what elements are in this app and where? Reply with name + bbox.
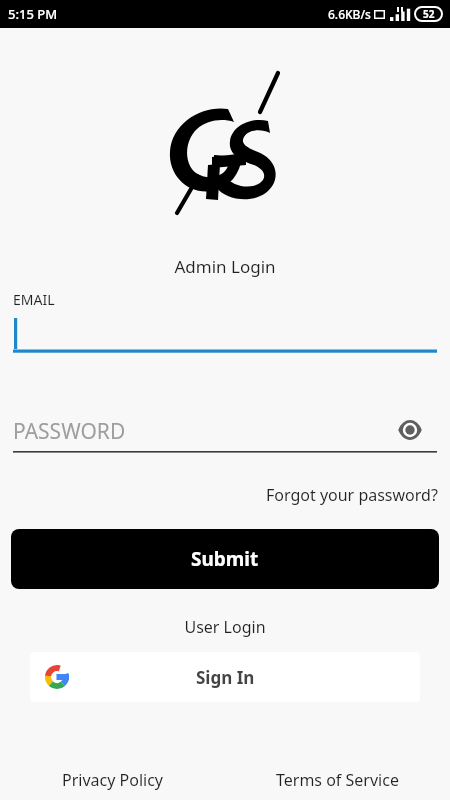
staticText: Sign In [196,666,255,689]
staticText: Admin Login [0,255,450,278]
button[interactable]: Password input [0,414,450,454]
staticText: PASSWORD [13,417,126,446]
button[interactable]: Terms of Service [272,765,403,795]
button[interactable]: Forgot your password? [266,484,450,506]
staticText: 5:15 PM [8,5,58,23]
staticText: 52 [423,7,435,21]
button[interactable]: Sign In [30,652,420,702]
button[interactable]: Show password [396,416,424,444]
staticText: Submit [191,546,259,572]
other: GS logo [150,65,300,225]
button[interactable]: Submit [11,529,439,589]
staticText: EMAIL [13,290,55,309]
staticText: 6.6KB/s [328,6,371,22]
button[interactable]: Privacy Policy [58,765,167,795]
button[interactable]: Email input [0,316,450,354]
staticText: User Login [0,616,450,638]
